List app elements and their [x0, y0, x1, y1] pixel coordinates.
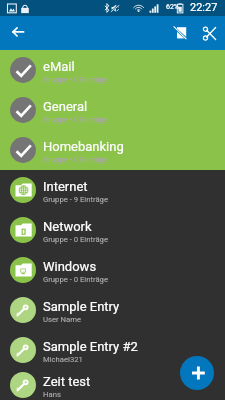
staticText: Gruppe - 9 Einträge	[43, 195, 108, 204]
button[interactable]: eMail	[0, 50, 225, 90]
staticText: 62%	[166, 3, 179, 11]
button[interactable]: Homebanking	[0, 130, 225, 170]
staticText: Internet	[43, 179, 88, 194]
button[interactable]: Paste	[163, 16, 197, 50]
button[interactable]: Sample Entry #2	[0, 330, 225, 370]
button[interactable]: Sample Entry	[0, 290, 225, 330]
button[interactable]: Cut	[193, 16, 225, 50]
button[interactable]: Back	[0, 16, 34, 50]
staticText: Michael321	[43, 355, 83, 364]
staticText: Gruppe - 0 Einträge	[43, 115, 108, 124]
button[interactable]: Internet	[0, 170, 225, 210]
button[interactable]: Zeit test	[0, 370, 225, 400]
staticText: Gruppe - 0 Einträge	[43, 235, 108, 244]
staticText: Windows	[43, 259, 97, 274]
staticText: Zeit test	[43, 374, 91, 389]
staticText: User Name	[43, 315, 82, 324]
staticText: Homebanking	[43, 139, 124, 154]
staticText: Gruppe - 0 Einträge	[43, 275, 108, 284]
staticText: Gruppe - 0 Einträge	[43, 155, 108, 164]
button[interactable]: Windows	[0, 250, 225, 290]
button[interactable]: General	[0, 90, 225, 130]
staticText: Hans	[43, 390, 61, 399]
staticText: Network	[43, 219, 92, 234]
button[interactable]: Network	[0, 210, 225, 250]
staticText: eMail	[43, 59, 75, 74]
staticText: 22:27	[190, 1, 218, 14]
staticText: Sample Entry #2	[43, 339, 138, 354]
button[interactable]: Add entry	[180, 356, 214, 390]
staticText: Sample Entry	[43, 299, 120, 314]
staticText: Gruppe - 0 Einträge	[43, 75, 108, 84]
staticText: General	[43, 99, 88, 114]
